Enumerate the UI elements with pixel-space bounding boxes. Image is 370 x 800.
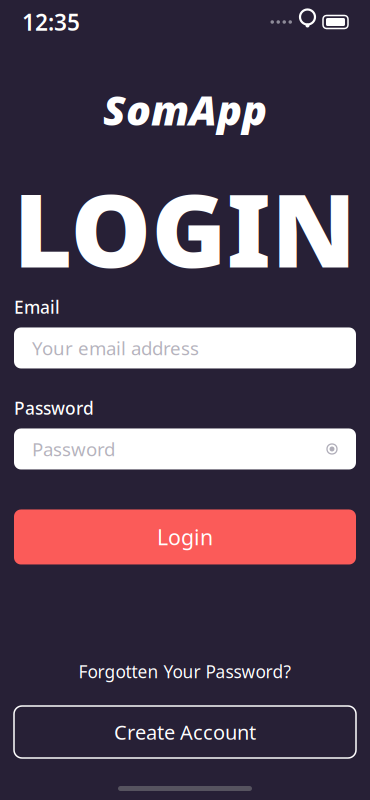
staticText: Create Account [114, 719, 256, 745]
staticText: Forgotten Your Password? [78, 660, 291, 683]
staticText: 12:35 [22, 7, 80, 37]
staticText: Email [14, 295, 60, 318]
staticText: Password [32, 437, 115, 461]
staticText: LOGIN [13, 161, 356, 295]
staticText: Your email address [32, 336, 199, 360]
staticText: Password [14, 396, 94, 419]
staticText: Login [157, 523, 213, 551]
button[interactable]: Show password [319, 436, 345, 462]
button[interactable]: Login [14, 509, 356, 564]
button[interactable]: Create Account [14, 706, 356, 758]
staticText: SomApp [103, 82, 267, 137]
button[interactable]: Forgotten Your Password? [64, 654, 305, 689]
